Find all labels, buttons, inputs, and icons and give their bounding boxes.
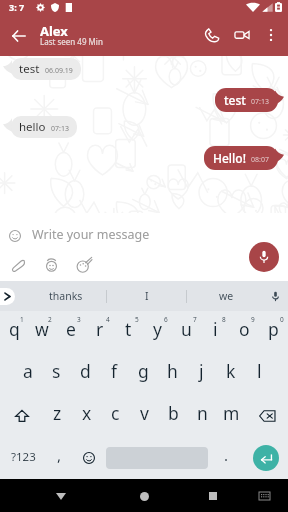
staticText: , [57, 445, 62, 465]
staticText: 07:13 [251, 97, 269, 107]
staticText: o [239, 317, 250, 341]
staticText: 4 [106, 315, 110, 324]
button[interactable]: test [215, 88, 278, 112]
staticText: a [23, 359, 33, 383]
button[interactable]: More suggestions [0, 288, 15, 305]
button[interactable]: a [14, 353, 42, 395]
button[interactable]: Recent apps [200, 483, 226, 509]
button[interactable]: z [43, 395, 72, 437]
button[interactable]: d [71, 353, 100, 395]
staticText: z [53, 401, 62, 425]
button[interactable]: test [11, 58, 81, 80]
staticText: 07:13 [51, 124, 69, 134]
button[interactable]: Enter [253, 445, 279, 471]
button[interactable]: x [72, 395, 101, 437]
staticText: 7 [193, 315, 197, 324]
staticText: v [140, 401, 149, 425]
button[interactable]: I [107, 281, 186, 311]
button[interactable]: v [130, 395, 159, 437]
staticText: y [153, 317, 162, 341]
staticText: t [125, 317, 132, 341]
button[interactable]: Stickers [41, 255, 61, 275]
button[interactable]: b [159, 395, 188, 437]
staticText: b [168, 401, 179, 425]
button[interactable]: Shift [0, 395, 43, 437]
staticText: 6 [164, 315, 168, 324]
staticText: 3 [77, 315, 81, 324]
staticText: n [197, 401, 208, 425]
staticText: f [111, 359, 118, 383]
staticText: c [111, 401, 120, 425]
button[interactable]: j [187, 353, 216, 395]
button[interactable]: c [101, 395, 130, 437]
button[interactable]: f [100, 353, 129, 395]
staticText: h [167, 359, 178, 383]
button[interactable]: hello [11, 116, 77, 138]
staticText: . [224, 445, 229, 465]
button[interactable]: ?123 [0, 437, 46, 479]
staticText: Last seen 49 Min [40, 36, 103, 47]
button[interactable]: Record voice message [249, 242, 279, 272]
button[interactable]: e [56, 311, 85, 353]
button[interactable]: g [129, 353, 158, 395]
button[interactable]: thanks [26, 281, 106, 311]
button[interactable]: t [114, 311, 143, 353]
button[interactable]: . [210, 437, 243, 479]
staticText: m [223, 401, 240, 425]
button[interactable]: Attach file [8, 255, 28, 275]
button[interactable]: Voice input [266, 287, 284, 305]
button[interactable]: we [187, 281, 266, 311]
staticText: Alex [40, 22, 68, 40]
button[interactable]: , [46, 437, 73, 479]
staticText: 3: 7 [9, 1, 25, 13]
button[interactable]: y [143, 311, 172, 353]
staticText: j [199, 359, 204, 383]
staticText: w [35, 317, 49, 341]
button[interactable]: Change keyboard [254, 486, 274, 506]
staticText: test [19, 61, 40, 77]
button[interactable]: Home [131, 483, 157, 509]
button[interactable]: Space [104, 447, 210, 469]
staticText: Hello! [213, 150, 246, 166]
button[interactable]: m [217, 395, 246, 437]
button[interactable]: Draw [74, 255, 94, 275]
staticText: 9 [251, 315, 255, 324]
button[interactable]: Call [197, 20, 227, 50]
button[interactable]: r [85, 311, 114, 353]
button[interactable]: p [259, 311, 288, 353]
button[interactable]: Emoji [73, 437, 104, 479]
staticText: 5 [135, 315, 139, 324]
button[interactable]: k [216, 353, 245, 395]
button[interactable]: q [0, 311, 28, 353]
staticText: thanks [49, 289, 83, 303]
staticText: d [80, 359, 91, 383]
button[interactable]: i [201, 311, 230, 353]
button[interactable]: Back [48, 483, 74, 509]
staticText: Write your message [32, 226, 150, 243]
staticText: hello [19, 119, 46, 135]
staticText: s [52, 359, 61, 383]
staticText: 1 [20, 315, 24, 324]
button[interactable]: Hello! [204, 146, 278, 170]
button[interactable]: Video call [227, 20, 257, 50]
button[interactable]: s [42, 353, 71, 395]
staticText: test [224, 92, 246, 108]
staticText: x [82, 401, 92, 425]
button[interactable]: More options [257, 21, 285, 49]
staticText: g [138, 359, 149, 383]
button[interactable]: w [28, 311, 56, 353]
button[interactable]: l [245, 353, 274, 395]
button[interactable]: h [158, 353, 187, 395]
staticText: u [181, 317, 192, 341]
staticText: l [257, 359, 262, 383]
staticText: q [9, 317, 20, 341]
button[interactable]: n [188, 395, 217, 437]
staticText: e [66, 317, 76, 341]
button[interactable]: u [172, 311, 201, 353]
button[interactable]: Backspace [246, 395, 288, 437]
staticText: 0 [280, 315, 284, 324]
button[interactable]: Back [0, 16, 38, 54]
staticText: ?123 [11, 449, 36, 465]
button[interactable]: o [230, 311, 259, 353]
staticText: 08:07 [251, 155, 269, 165]
